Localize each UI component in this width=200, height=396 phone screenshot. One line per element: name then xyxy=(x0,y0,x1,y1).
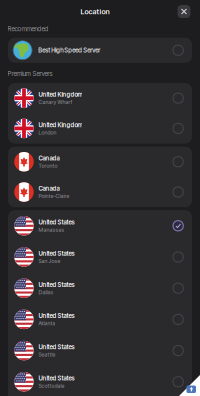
staticText: United Kingdom xyxy=(38,121,82,129)
staticText: Canary Wharf xyxy=(38,99,72,105)
button[interactable]: United Kingdom xyxy=(8,113,192,144)
staticText: Canada xyxy=(38,154,59,162)
staticText: United Kingdom xyxy=(38,91,82,98)
button[interactable]: United States xyxy=(8,304,192,335)
staticText: Atlanta xyxy=(38,320,55,327)
button[interactable]: United States xyxy=(8,210,192,241)
button[interactable]: United States xyxy=(8,273,192,304)
staticText: Toronto xyxy=(38,162,57,169)
staticText: United States xyxy=(38,374,74,382)
staticText: Premium Servers xyxy=(7,70,52,77)
staticText: Canada xyxy=(38,185,59,192)
button[interactable]: United Kingdom xyxy=(8,83,192,113)
staticText: Recommended xyxy=(7,25,48,33)
staticText: United States xyxy=(38,250,74,257)
button[interactable]: United States xyxy=(8,366,192,396)
staticText: San Jose xyxy=(38,258,60,264)
button[interactable]: Canada xyxy=(8,147,192,177)
staticText: Pointe-Claire xyxy=(38,193,69,199)
staticText: Dallas xyxy=(38,289,53,295)
staticText: Seattle xyxy=(38,351,55,358)
button[interactable]: United States xyxy=(8,241,192,273)
button[interactable]: Canada xyxy=(8,177,192,207)
button[interactable] xyxy=(177,5,190,18)
button[interactable]: United States xyxy=(8,335,192,366)
button[interactable]: Best High Speed Server xyxy=(8,38,192,63)
staticText: Scottsdale xyxy=(38,383,64,389)
staticText: Best High Speed Server xyxy=(38,46,100,54)
staticText: United States xyxy=(38,312,74,319)
staticText: United States xyxy=(38,343,74,351)
staticText: United States xyxy=(38,218,74,226)
staticText: Location xyxy=(80,7,109,16)
staticText: London xyxy=(38,129,56,136)
staticText: United States xyxy=(38,281,74,288)
staticText: Manassas xyxy=(38,227,64,233)
